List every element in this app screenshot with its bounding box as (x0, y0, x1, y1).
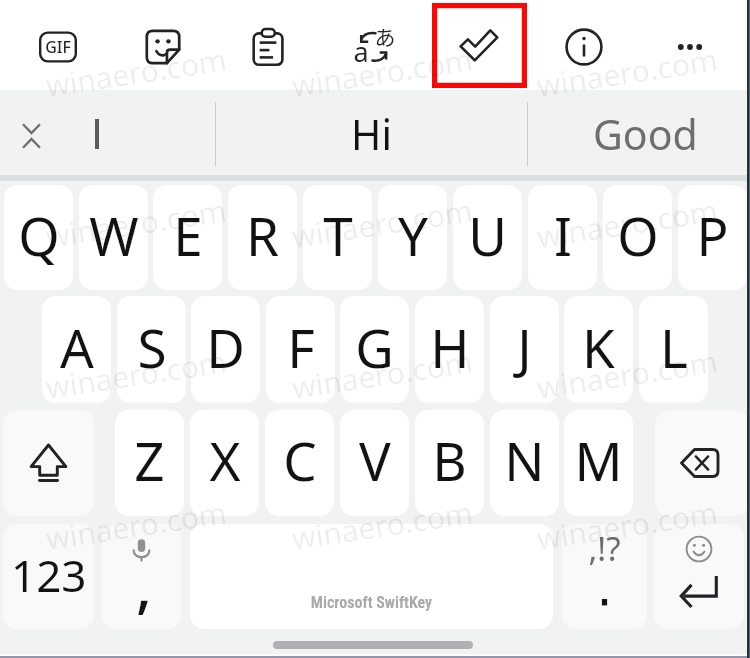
staticText: winaero.com (534, 189, 721, 257)
staticText: S (137, 311, 167, 383)
staticText: GIF (40, 36, 76, 58)
staticText: D (206, 311, 245, 383)
button[interactable]: S (117, 296, 186, 403)
button[interactable]: B (415, 410, 484, 516)
staticText: a (350, 33, 372, 70)
button[interactable]: V (340, 410, 409, 516)
button[interactable]: U (453, 185, 522, 290)
button[interactable]: T (303, 185, 372, 290)
staticText: winaero.com (534, 38, 721, 106)
staticText: X (209, 424, 241, 496)
staticText: 123 (11, 545, 87, 605)
staticText: E (173, 199, 203, 271)
button[interactable]: Comma and voice input (102, 524, 181, 629)
staticText: U (468, 199, 507, 271)
button[interactable]: G (340, 296, 409, 403)
button[interactable]: Collapse keyboard (6, 100, 57, 172)
staticText: winaero.com (289, 38, 476, 106)
button[interactable]: Info (539, 3, 629, 91)
staticText: Y (398, 199, 428, 271)
staticText: J (517, 311, 532, 383)
staticText: あ (374, 21, 396, 51)
staticText: F (287, 311, 315, 383)
button[interactable]: W (79, 185, 148, 290)
button[interactable]: E (153, 185, 222, 290)
button[interactable]: M (564, 410, 633, 516)
button[interactable]: Stickers (118, 3, 208, 91)
staticText: , (136, 545, 152, 624)
staticText: I (554, 199, 572, 271)
button[interactable]: Y (378, 185, 447, 290)
staticText: Microsoft SwiftKey (190, 593, 553, 612)
button[interactable]: D (191, 296, 260, 403)
staticText: B (432, 424, 467, 496)
staticText: G (355, 311, 394, 383)
button[interactable]: F (266, 296, 335, 403)
staticText: K (582, 311, 615, 383)
button[interactable]: X (190, 410, 259, 516)
button[interactable]: Backspace (655, 410, 749, 516)
button[interactable]: Shift (3, 410, 94, 516)
staticText: V (359, 424, 391, 496)
button[interactable]: Enter and emoji (654, 524, 744, 629)
button[interactable]: GIF (13, 3, 103, 91)
staticText: O (617, 199, 659, 271)
staticText: Hi (351, 106, 392, 162)
staticText: P (696, 199, 729, 271)
button[interactable]: K (564, 296, 633, 403)
staticText: winaero.com (43, 189, 230, 257)
staticText: W (89, 199, 139, 271)
staticText: Good (593, 106, 698, 162)
staticText: Q (18, 199, 60, 271)
button[interactable]: 123 (3, 524, 94, 629)
staticText: N (504, 424, 545, 496)
staticText: winaero.com (289, 340, 476, 408)
button[interactable]: C (265, 410, 334, 516)
staticText: C (283, 424, 317, 496)
button[interactable]: Hi (216, 90, 527, 175)
button[interactable]: Clipboard (223, 3, 313, 91)
button[interactable]: J (490, 296, 559, 403)
button[interactable]: Translate (328, 3, 418, 91)
staticText: M (574, 424, 623, 496)
staticText: ,!? (562, 526, 647, 571)
button[interactable]: H (415, 296, 484, 403)
staticText: winaero.com (534, 491, 721, 559)
button[interactable]: More options (645, 3, 735, 91)
staticText: winaero.com (43, 38, 230, 106)
staticText: winaero.com (289, 491, 476, 559)
staticText: winaero.com (289, 189, 476, 257)
staticText: T (323, 199, 353, 271)
staticText: winaero.com (43, 491, 230, 559)
button[interactable]: P (678, 185, 747, 290)
button[interactable]: Z (115, 410, 184, 516)
button[interactable]: Editor (433, 3, 523, 91)
button[interactable]: N (490, 410, 559, 516)
button[interactable]: R (228, 185, 297, 290)
staticText: L (660, 311, 688, 383)
staticText: Z (134, 424, 165, 496)
button[interactable]: Q (4, 185, 73, 290)
button[interactable]: O (603, 185, 672, 290)
button[interactable]: L (639, 296, 708, 403)
staticText: winaero.com (43, 340, 230, 408)
button[interactable]: I (528, 185, 597, 290)
button[interactable]: Good (528, 90, 750, 175)
staticText: winaero.com (534, 340, 721, 408)
button[interactable]: Microsoft SwiftKey (190, 524, 553, 629)
staticText: R (246, 199, 279, 271)
button[interactable]: Period and punctuation (562, 524, 647, 629)
button[interactable]: A (42, 296, 111, 403)
staticText: H (430, 311, 470, 383)
staticText: A (60, 311, 94, 383)
